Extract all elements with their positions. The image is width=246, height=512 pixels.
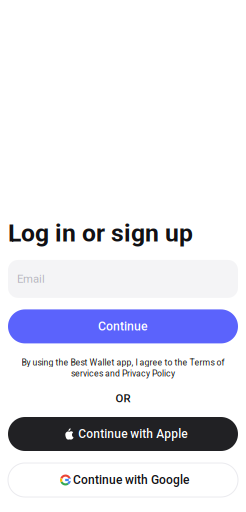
staticText: Continue xyxy=(98,319,148,334)
button[interactable]: Continue with Apple xyxy=(0,417,246,451)
button[interactable]: Continue xyxy=(0,309,246,343)
staticText: Continue with Google xyxy=(73,473,189,487)
staticText: Continue with Apple xyxy=(78,427,187,441)
button[interactable]: Continue with Google xyxy=(0,463,246,497)
staticText: services and Privacy Policy xyxy=(71,369,175,379)
staticText: Log in or sign up xyxy=(8,218,193,247)
staticText: OR xyxy=(115,392,130,405)
staticText: By using the Best Wallet app, I agree to… xyxy=(21,357,224,368)
staticText: Email xyxy=(17,272,45,286)
